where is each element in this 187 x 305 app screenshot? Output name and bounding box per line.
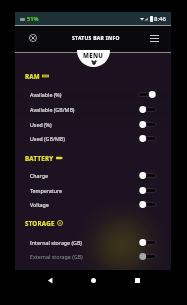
staticText: RAM	[25, 72, 40, 80]
staticText: Used (%)	[30, 121, 52, 128]
staticText: Voltage	[30, 201, 49, 208]
staticText: Available (%)	[30, 91, 62, 98]
button[interactable]: Used (GB/MB)	[15, 131, 171, 146]
staticText: Used (GB/MB)	[30, 135, 65, 142]
staticText: 8:46	[154, 15, 166, 23]
staticText: Charge	[30, 172, 48, 179]
button[interactable]: Temperature	[15, 183, 171, 198]
staticText: 51%	[27, 15, 39, 23]
staticText: STATUS BAR INFO	[72, 35, 120, 42]
button[interactable]: Charge	[15, 168, 171, 183]
button[interactable]: Voltage	[15, 197, 171, 212]
staticText: Temperature	[30, 187, 63, 194]
button[interactable]: Back	[42, 272, 58, 288]
button[interactable]: Used (%)	[15, 117, 171, 132]
staticText: External storage (GB)	[30, 253, 83, 260]
button[interactable]: MENU	[77, 50, 110, 67]
button[interactable]: Home	[85, 272, 101, 288]
staticText: BATTERY	[25, 154, 54, 162]
button[interactable]: Available (%)	[15, 87, 171, 102]
button[interactable]: Menu	[150, 32, 163, 45]
staticText: Available (GB/MB)	[30, 106, 75, 113]
staticText: STORAGE	[25, 219, 55, 227]
button[interactable]: Available (GB/MB)	[15, 102, 171, 117]
staticText: MENU	[83, 51, 104, 59]
button[interactable]: Internal storage (GB)	[15, 235, 171, 250]
button[interactable]: Recents	[129, 272, 145, 288]
staticText: Internal storage (GB)	[30, 239, 82, 246]
button[interactable]: External storage (GB)	[15, 249, 171, 264]
button[interactable]: Close	[26, 31, 39, 44]
